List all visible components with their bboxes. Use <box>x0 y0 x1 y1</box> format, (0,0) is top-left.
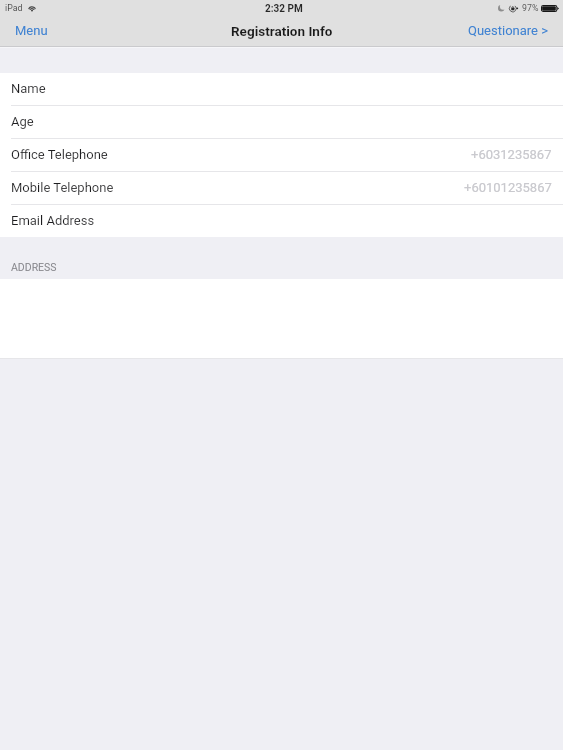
staticText: +60101235867 <box>464 180 552 195</box>
staticText: Age <box>11 114 34 129</box>
button[interactable]: Menu <box>0 19 60 42</box>
staticText: Email Address <box>11 213 95 228</box>
staticText: Office Telephone <box>11 147 108 162</box>
button[interactable]: Age <box>0 106 563 139</box>
staticText: ADDRESS <box>11 261 57 273</box>
staticText: 97% <box>522 3 539 13</box>
staticText: Mobile Telephone <box>11 180 114 195</box>
staticText: 2:32 PM <box>265 3 303 15</box>
button[interactable]: Name <box>0 73 563 106</box>
staticText: +6031235867 <box>471 147 552 162</box>
staticText: Registration Info <box>231 23 333 39</box>
staticText: Questionare > <box>468 23 548 38</box>
button[interactable]: Email Address <box>0 205 563 237</box>
staticText: Name <box>11 81 46 96</box>
button[interactable]: Office Telephone <box>0 139 563 172</box>
staticText: Menu <box>15 23 48 38</box>
staticText: iPad <box>5 3 23 13</box>
button[interactable]: Mobile Telephone <box>0 172 563 205</box>
button[interactable]: Questionare > <box>456 19 563 42</box>
